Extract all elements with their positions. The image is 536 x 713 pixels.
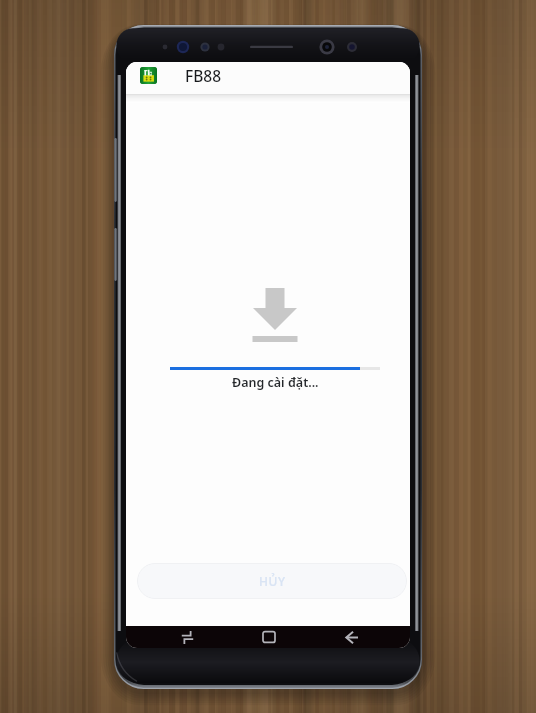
button[interactable]: HỦY [137, 563, 407, 599]
button[interactable]: FB88 app icon [126, 62, 410, 89]
staticText: Đang cài đặt... [232, 374, 319, 391]
button[interactable]: Back [310, 626, 392, 648]
staticText: FB88 [185, 65, 222, 86]
button[interactable]: Recent apps [147, 626, 228, 648]
button[interactable]: Home [228, 626, 310, 648]
staticText: HỦY [259, 573, 286, 589]
button[interactable]: FB88 app icon [140, 67, 157, 84]
